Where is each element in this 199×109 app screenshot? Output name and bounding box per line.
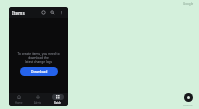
button[interactable]: Record (184, 93, 193, 102)
button[interactable]: Batch (48, 93, 68, 106)
staticText: Home (15, 101, 23, 105)
staticText: Batch (54, 101, 62, 105)
staticText: Capture (183, 103, 193, 106)
button[interactable]: More options (58, 9, 65, 16)
button[interactable]: Search (49, 9, 56, 16)
button[interactable]: Download (20, 67, 58, 76)
staticText: To create items, you need to download th… (13, 52, 64, 64)
button[interactable]: Refresh (40, 9, 47, 16)
staticText: Google (183, 2, 194, 6)
staticText: Items (12, 10, 25, 16)
button[interactable]: Home (9, 93, 28, 106)
staticText: Download (31, 69, 48, 74)
button[interactable]: Alerts (28, 93, 48, 106)
staticText: Alerts (34, 101, 42, 105)
